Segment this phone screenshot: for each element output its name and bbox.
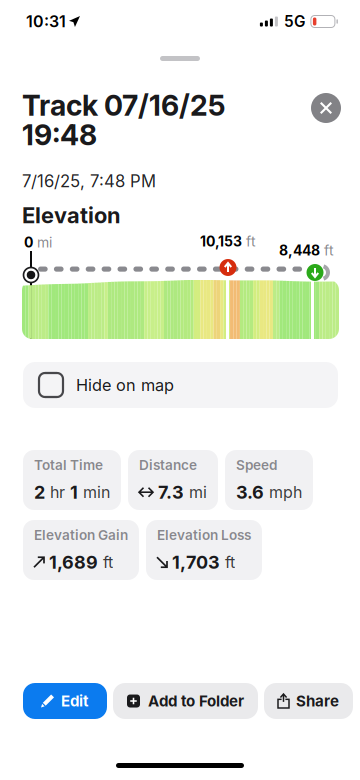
button[interactable]: Add to Folder [113,683,258,719]
staticText: ft [220,552,235,572]
staticText: Elevation Gain [34,527,128,543]
staticText: 10:31 [26,12,66,31]
staticText: ft [246,233,256,250]
button[interactable]: Share [264,683,353,719]
staticText: Elevation [22,202,121,228]
staticText: 7/16/25, 7:48 PM [22,171,156,191]
staticText: ft [98,552,113,572]
staticText: Add to Folder [148,692,244,710]
staticText: 1,703 [172,551,220,573]
staticText: ft [324,242,334,259]
staticText: Track 07/16/25 [22,88,225,122]
staticText: 2 [34,481,45,503]
staticText: Hide on map [76,375,174,395]
staticText: Speed [236,457,277,473]
staticText: min [78,482,110,502]
staticText: hr [45,482,70,502]
staticText: Total Time [34,457,103,473]
button[interactable]: Close [308,90,344,126]
staticText: Distance [139,457,197,473]
staticText: mi [184,482,207,502]
staticText: 5G [284,12,305,31]
staticText: 1,689 [49,551,98,573]
staticText: Share [296,692,339,710]
staticText: 1 [70,481,78,503]
staticText: mph [264,482,302,502]
staticText: 3.6 [236,481,264,503]
staticText: 8,448 [279,242,320,259]
staticText: Edit [61,692,89,710]
staticText: 10,153 [200,233,242,250]
staticText: 19:48 [22,117,97,152]
staticText: 0 [24,234,33,251]
button[interactable]: Edit [23,683,107,719]
button[interactable]: Hide on map [23,362,338,408]
staticText: Elevation Loss [157,527,251,543]
staticText: mi [37,234,52,251]
staticText: 7.3 [158,481,184,503]
